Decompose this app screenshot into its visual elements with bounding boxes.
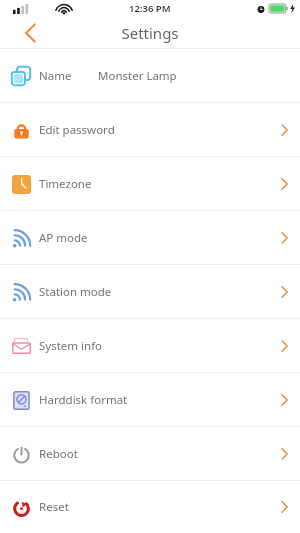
staticText: Settings <box>121 23 179 43</box>
staticText: Monster Lamp <box>98 68 177 84</box>
staticText: Harddisk format <box>39 392 128 408</box>
staticText: AP mode <box>39 230 88 246</box>
button[interactable]: Edit password <box>0 103 300 156</box>
staticText: System info <box>39 338 103 354</box>
button[interactable]: Back <box>14 17 46 48</box>
button[interactable]: Reset <box>0 481 300 533</box>
staticText: Reboot <box>39 446 78 462</box>
button[interactable]: Timezone <box>0 157 300 210</box>
button[interactable]: System info <box>0 319 300 372</box>
button[interactable]: Harddisk format <box>0 373 300 426</box>
staticText: Reset <box>39 499 69 515</box>
staticText: Edit password <box>39 122 115 138</box>
button[interactable]: Station mode <box>0 265 300 318</box>
staticText: 12:36 PM <box>129 2 171 15</box>
button[interactable]: AP mode <box>0 211 300 264</box>
staticText: Station mode <box>39 284 112 300</box>
button[interactable]: Reboot <box>0 427 300 480</box>
button[interactable]: Name <box>0 49 300 102</box>
staticText: Timezone <box>39 176 92 192</box>
staticText: Name <box>39 68 72 84</box>
